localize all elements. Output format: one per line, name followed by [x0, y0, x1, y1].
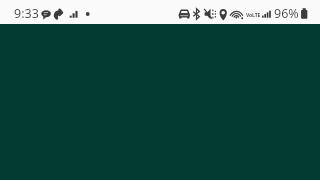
- staticText: 9:33: [14, 5, 39, 22]
- staticText: VoLTE: [246, 11, 261, 18]
- staticText: 96%: [274, 5, 299, 22]
